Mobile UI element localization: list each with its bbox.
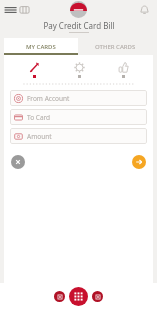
button[interactable]: Menu <box>4 3 18 17</box>
staticText: OTHER CARDS <box>95 43 136 51</box>
button[interactable]: Menu grid <box>69 287 88 306</box>
button[interactable]: Logo <box>70 1 87 18</box>
button[interactable]: Step 1 details <box>12 61 57 78</box>
staticText: To Card <box>27 113 51 122</box>
button[interactable]: Cancel <box>11 155 25 169</box>
staticText: Pay Credit Card Bill <box>43 20 115 31</box>
staticText: From Account <box>27 94 70 103</box>
button[interactable]: To Card <box>10 109 147 125</box>
button[interactable]: Transfers <box>54 291 65 302</box>
button[interactable]: Notifications <box>138 3 151 16</box>
button[interactable]: MY CARDS <box>4 38 78 55</box>
button[interactable]: From Account <box>10 90 147 106</box>
button[interactable]: OTHER CARDS <box>78 38 153 55</box>
staticText: Amount <box>27 132 52 141</box>
button[interactable]: Next <box>132 155 146 169</box>
button[interactable]: Payments <box>92 291 103 302</box>
button[interactable]: Amount <box>10 128 147 144</box>
button[interactable]: Step 3 done <box>101 61 145 78</box>
button[interactable]: Step 2 confirm <box>57 61 101 78</box>
staticText: MY CARDS <box>26 43 56 51</box>
button[interactable]: Branches <box>18 3 31 16</box>
